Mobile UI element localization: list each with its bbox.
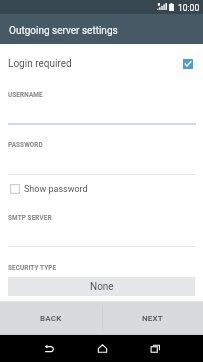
staticText: Login required — [8, 58, 72, 70]
button[interactable]: Login required — [0, 50, 203, 77]
staticText: SECURITY TYPE — [8, 264, 57, 272]
button[interactable]: BACK — [0, 301, 101, 335]
button[interactable]: Recents — [143, 339, 167, 358]
staticText: None — [90, 281, 114, 293]
staticText: USERNAME — [8, 91, 43, 99]
staticText: 10:00 — [178, 3, 200, 13]
button[interactable]: Back — [37, 339, 61, 358]
staticText: BACK — [40, 314, 62, 323]
staticText: SMTP SERVER — [8, 214, 52, 222]
staticText: NEXT — [142, 314, 163, 323]
staticText: PASSWORD — [8, 141, 43, 149]
button[interactable]: Home — [90, 339, 114, 358]
button[interactable]: None — [8, 277, 195, 296]
staticText: Outgoing server settings — [9, 25, 118, 37]
staticText: Show password — [24, 184, 88, 195]
button[interactable]: Show password — [0, 179, 203, 199]
button[interactable]: NEXT — [101, 301, 203, 335]
